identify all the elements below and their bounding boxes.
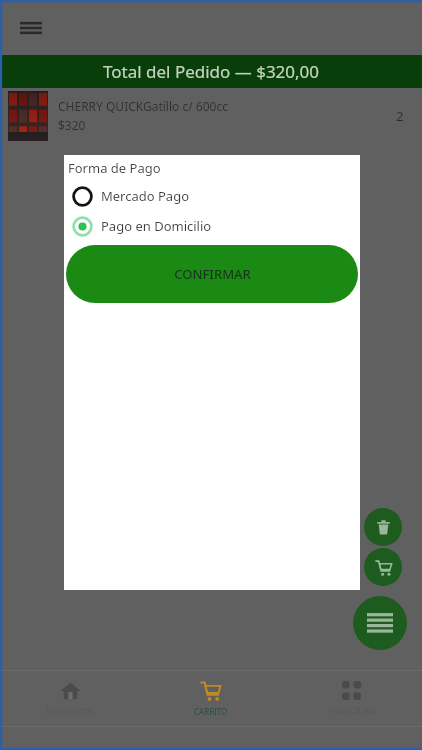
staticText: Forma de Pago [68,159,161,177]
staticText: 2 [396,107,404,125]
button[interactable]: CARRITO [140,671,281,726]
staticText: CONFIRMAR [174,265,251,283]
button[interactable]: PRODUCTOS [0,671,140,726]
button[interactable]: CONFIRMAR [66,245,358,303]
staticText: CHERRY QUICKGatillo c/ 600cc [58,98,228,114]
button[interactable]: CHERRY QUICKGatillo c/ 600cc [0,88,422,143]
staticText: $320 [58,117,86,133]
button[interactable]: Delete [364,508,402,546]
staticText: Total del Pedido — $320,00 [103,60,320,83]
staticText: CARRITO [194,706,228,717]
staticText: Pago en Domicilio [101,217,212,235]
staticText: Mercado Pago [101,187,190,205]
button[interactable]: Menu options [353,596,407,650]
button[interactable]: Mercado Pago [64,183,360,209]
button[interactable]: Menu [14,11,48,45]
button[interactable]: Pago en Domicilio [64,213,360,239]
button[interactable]: PUBLICIDAD [281,671,422,726]
button[interactable]: Cart [364,548,402,586]
